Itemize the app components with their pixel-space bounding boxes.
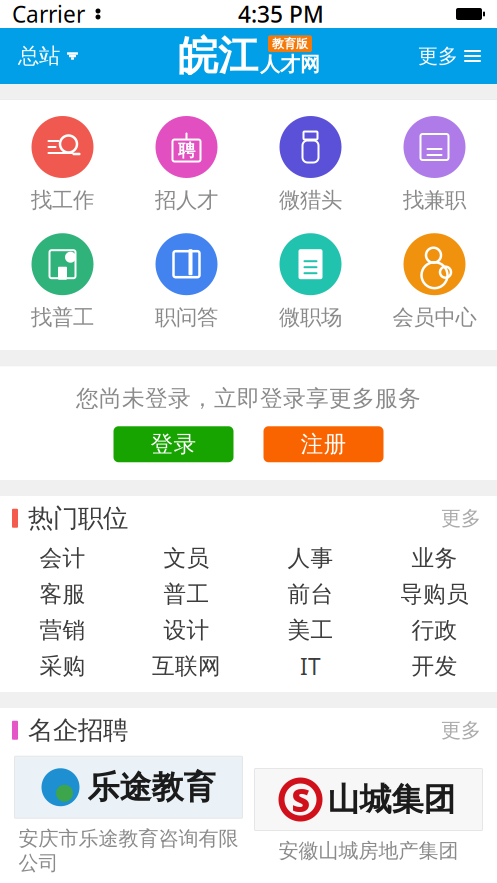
button[interactable]: 找工作 (0, 116, 124, 213)
staticText: 微猎头 (279, 187, 342, 213)
staticText: 聘 (178, 140, 195, 161)
staticText: 找普工 (31, 304, 94, 330)
staticText: 4:35 PM (238, 0, 324, 29)
button[interactable]: 总站 (0, 28, 96, 84)
staticText: 皖江 (178, 31, 258, 80)
staticText: 招人才 (155, 187, 218, 213)
staticText: 设计 (163, 616, 209, 644)
staticText: 找兼职 (403, 187, 466, 213)
button[interactable]: 会员中心 (372, 233, 496, 330)
button[interactable]: 微职场 (248, 233, 372, 330)
staticText: 采购 (39, 652, 85, 680)
staticText: S (291, 778, 309, 821)
staticText: 安徽山城房地产集团 (278, 838, 458, 863)
staticText: 总站 (18, 43, 60, 69)
staticText: Carrier (12, 0, 85, 29)
staticText: 人才网 (260, 52, 320, 77)
button[interactable]: 采购 (0, 648, 124, 684)
button[interactable]: 普工 (124, 576, 248, 612)
staticText: 乐途教育 (87, 768, 215, 807)
staticText: 普工 (163, 580, 209, 608)
button[interactable]: 会计 (0, 540, 124, 576)
staticText: 文员 (163, 544, 209, 572)
staticText: 会计 (39, 544, 85, 572)
staticText: 登录 (150, 430, 196, 458)
staticText: 更多 (441, 718, 481, 743)
button[interactable]: 客服 (0, 576, 124, 612)
staticText: 美工 (287, 616, 333, 644)
staticText (85, 2, 90, 25)
staticText: 注册 (300, 430, 346, 458)
button[interactable]: 互联网 (124, 648, 248, 684)
staticText: 前台 (287, 580, 333, 608)
button[interactable]: 职问答 (124, 233, 248, 330)
button[interactable]: 人事 (248, 540, 372, 576)
button[interactable]: 前台 (248, 576, 372, 612)
staticText: 会员中心 (392, 304, 476, 330)
button[interactable]: 聘 (124, 116, 248, 213)
staticText: 更多 (418, 44, 458, 68)
staticText: 山城集团 (327, 780, 455, 819)
button[interactable]: 更多 (437, 500, 485, 537)
staticText: 客服 (39, 580, 85, 608)
staticText: 更多 (441, 506, 481, 531)
button[interactable]: 设计 (124, 612, 248, 648)
staticText: 人事 (287, 544, 333, 572)
button[interactable]: 业务 (372, 540, 496, 576)
staticText: 导购员 (400, 580, 469, 608)
staticText: 安庆市乐途教育咨询有限公司 (18, 826, 238, 875)
staticText: 营销 (39, 616, 85, 644)
staticText: 职问答 (155, 304, 218, 330)
button[interactable]: 文员 (124, 540, 248, 576)
button[interactable]: 行政 (372, 612, 496, 648)
button[interactable]: IT (248, 648, 372, 684)
staticText: 您尚未登录，立即登录享更多服务 (76, 384, 421, 412)
button[interactable]: 营销 (0, 612, 124, 648)
button[interactable]: 找普工 (0, 233, 124, 330)
button[interactable]: 更多 (402, 28, 497, 84)
staticText: 教育版 (272, 36, 308, 51)
button[interactable]: 微猎头 (248, 116, 372, 213)
button[interactable]: S (254, 768, 482, 863)
staticText: 微职场 (279, 304, 342, 330)
staticText: 业务 (411, 544, 457, 572)
button[interactable]: 登录 (113, 426, 233, 462)
staticText: 互联网 (152, 652, 221, 680)
button[interactable]: 美工 (248, 612, 372, 648)
button[interactable]: 开发 (372, 648, 496, 684)
button[interactable]: 乐途教育 (14, 756, 242, 875)
button[interactable]: 更多 (437, 712, 485, 749)
button[interactable]: 找兼职 (372, 116, 496, 213)
button[interactable]: 注册 (263, 426, 383, 462)
staticText: 行政 (411, 616, 457, 644)
button[interactable]: 导购员 (372, 576, 496, 612)
staticText: 名企招聘 (28, 715, 128, 746)
staticText: 找工作 (31, 187, 94, 213)
staticText: 开发 (411, 652, 457, 680)
staticText: 热门职位 (28, 503, 128, 534)
staticText: IT (300, 651, 321, 681)
